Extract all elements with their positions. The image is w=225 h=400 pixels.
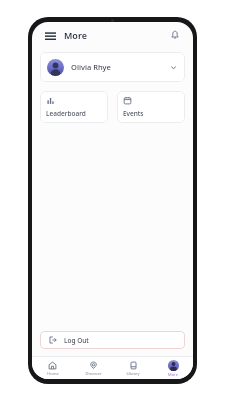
button[interactable]: Discover [73,359,113,378]
staticText: Events [123,109,144,118]
button[interactable]: Profile [153,358,193,379]
button[interactable]: Notifications [167,27,183,43]
button[interactable]: Menu [42,27,58,43]
staticText: Olivia Rhye [71,62,111,72]
button[interactable]: Events [117,91,185,123]
button[interactable]: Home [32,359,73,378]
staticText: More [168,372,178,377]
button[interactable]: Library [113,359,153,378]
staticText: Leaderboard [46,109,86,118]
staticText: Discover [85,371,102,376]
staticText: Home [47,371,59,376]
button[interactable]: Log Out [40,331,185,349]
button[interactable]: Leaderboard [40,91,108,123]
button[interactable]: Olivia Rhye [40,52,185,82]
staticText: Library [126,371,140,376]
staticText: More [64,29,87,41]
staticText: Log Out [64,336,89,345]
